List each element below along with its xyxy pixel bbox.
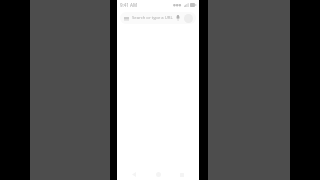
button[interactable]: Account — [184, 14, 193, 23]
button[interactable]: Home — [151, 169, 165, 180]
staticText: ●●● — [173, 3, 182, 7]
button[interactable]: Menu — [120, 12, 196, 24]
button[interactable]: Recent apps — [175, 169, 189, 180]
staticText: 9:41 AM — [120, 2, 138, 8]
staticText: Search or type a URL — [132, 15, 174, 21]
button[interactable]: Voice search — [174, 14, 182, 22]
button[interactable]: Menu — [123, 15, 130, 22]
